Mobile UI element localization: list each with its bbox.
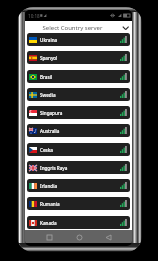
button[interactable]: Swedia <box>27 88 130 101</box>
button[interactable]: Kanada <box>27 216 130 229</box>
staticText: Ukraina <box>40 37 58 43</box>
staticText: Brasil <box>40 74 53 80</box>
button[interactable]: Ukraina <box>27 33 130 46</box>
staticText: Spanyol <box>40 55 58 61</box>
button[interactable]: Spanyol <box>27 51 130 64</box>
staticText: Irlandia <box>40 183 58 189</box>
staticText: Australia <box>40 128 60 134</box>
button[interactable]: Recents <box>44 232 54 242</box>
button[interactable]: Back <box>103 232 113 242</box>
staticText: Ceska <box>40 147 53 153</box>
button[interactable]: Irlandia <box>27 179 130 192</box>
button[interactable]: Select Country server <box>25 21 132 33</box>
button[interactable]: Rumania <box>27 197 130 210</box>
staticText: Inggris Raya <box>40 165 68 171</box>
staticText: Swedia <box>40 92 56 98</box>
button[interactable]: Singapura <box>27 106 130 119</box>
staticText: 10:18 <box>28 13 40 19</box>
button[interactable]: Australia <box>27 124 130 137</box>
staticText: Select Country server <box>25 24 120 32</box>
button[interactable]: Home <box>74 232 84 242</box>
button[interactable]: Inggris Raya <box>27 161 130 174</box>
staticText: Kanada <box>40 220 57 226</box>
staticText: Rumania <box>40 201 60 207</box>
staticText: Singapura <box>40 110 63 116</box>
button[interactable]: Ceska <box>27 143 130 156</box>
button[interactable]: Brasil <box>27 70 130 83</box>
